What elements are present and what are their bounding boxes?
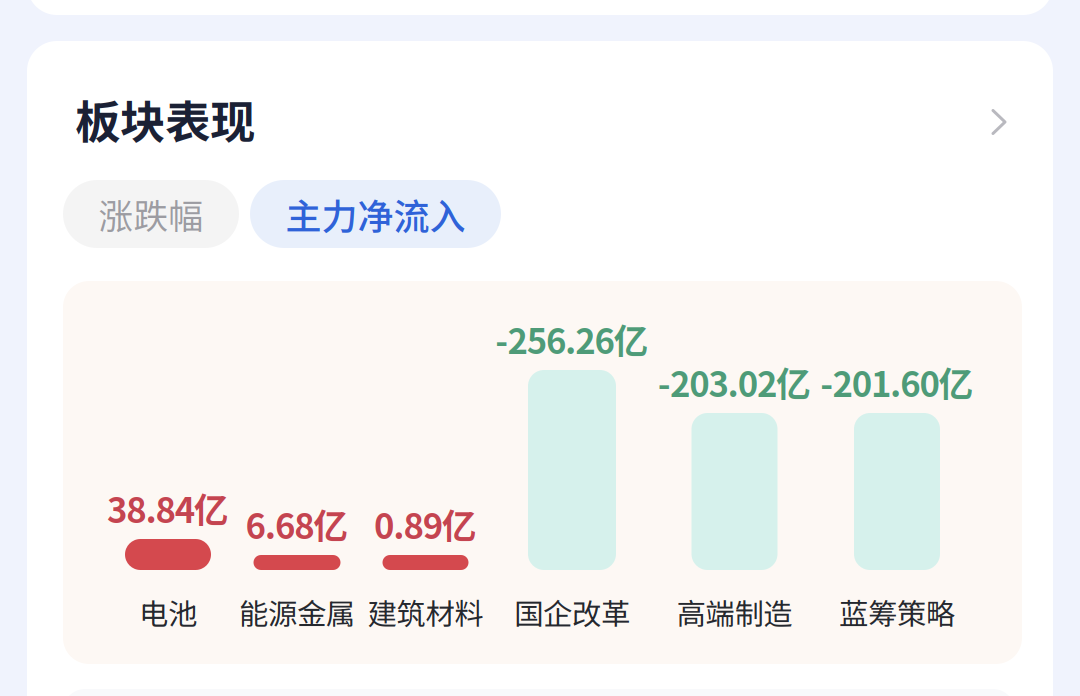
staticText: 国企改革: [514, 591, 630, 633]
staticText: 涨跌幅: [98, 189, 203, 239]
button[interactable]: 电池 38.84亿: [93, 270, 243, 570]
staticText: 38.84亿: [107, 483, 229, 533]
button[interactable]: 高端制造 -203.02亿: [659, 270, 809, 570]
staticText: 建筑材料: [367, 591, 483, 633]
staticText: 0.89亿: [374, 499, 477, 549]
button[interactable]: 涨跌幅: [63, 180, 239, 248]
button[interactable]: 能源金属 6.68亿: [222, 270, 372, 570]
button[interactable]: 建筑材料 0.89亿: [350, 270, 500, 570]
staticText: 蓝筹策略: [839, 591, 955, 633]
staticText: 电池: [139, 591, 197, 633]
staticText: 高端制造: [676, 591, 792, 633]
button[interactable]: 蓝筹策略 -201.60亿: [822, 270, 972, 570]
staticText: 主力净流入: [285, 188, 465, 240]
staticText: -203.02亿: [658, 357, 811, 407]
staticText: -256.26亿: [495, 314, 649, 364]
staticText: -201.60亿: [820, 357, 974, 407]
staticText: 6.68亿: [246, 499, 348, 549]
staticText: 能源金属: [239, 591, 355, 633]
button[interactable]: 板块表现: [27, 73, 1053, 165]
button[interactable]: 国企改革 -256.26亿: [497, 270, 647, 570]
button[interactable]: 主力净流入: [250, 180, 501, 248]
staticText: 板块表现: [75, 86, 255, 152]
